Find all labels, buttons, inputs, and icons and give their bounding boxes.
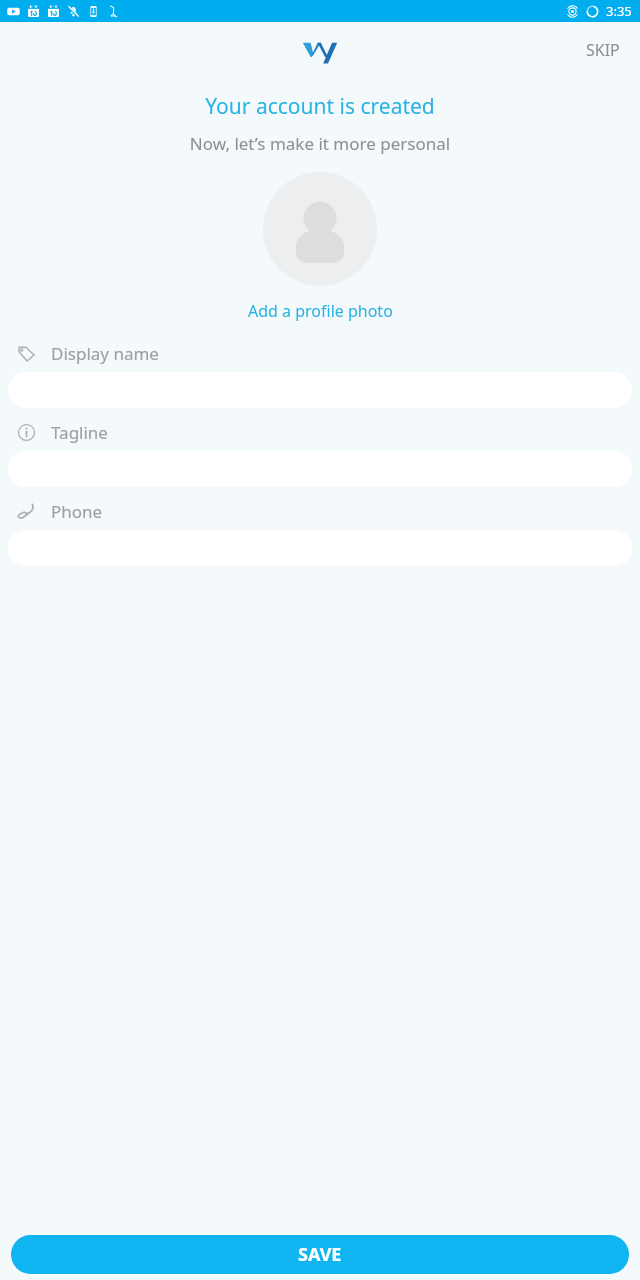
staticText: 3:35 — [606, 2, 632, 20]
staticText: Phone — [51, 500, 103, 523]
button[interactable]: Logo — [300, 37, 340, 63]
button[interactable]: SKIP — [566, 29, 640, 71]
button[interactable]: Add a profile photo — [263, 172, 377, 286]
staticText: SKIP — [586, 39, 620, 61]
button[interactable]: SAVE — [11, 1235, 629, 1274]
staticText: Now, let’s make it more personal — [0, 132, 640, 155]
staticText: Tagline — [51, 421, 108, 444]
staticText: Display name — [51, 342, 159, 365]
staticText: Add a profile photo — [248, 300, 393, 322]
staticText: Your account is created — [0, 92, 640, 121]
button[interactable]: Add a profile photo — [240, 298, 401, 324]
staticText: SAVE — [298, 1242, 342, 1267]
